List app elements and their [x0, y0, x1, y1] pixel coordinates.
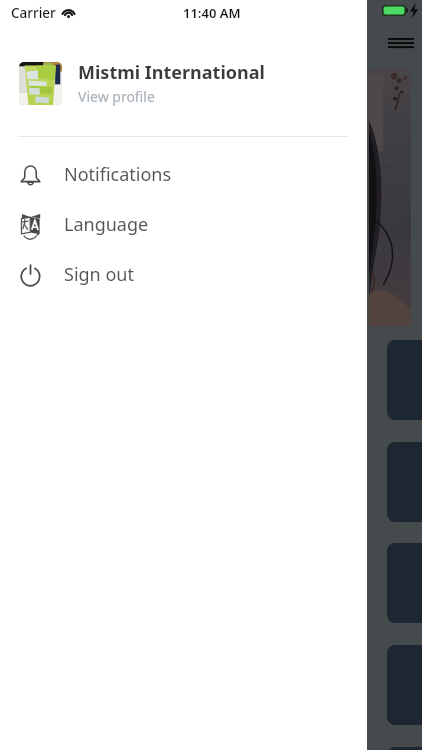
- staticText: View profile: [78, 87, 155, 106]
- button[interactable]: [387, 747, 422, 750]
- button[interactable]: Language: [0, 199, 367, 249]
- button[interactable]: Mistmi International: [0, 56, 367, 110]
- button[interactable]: [387, 442, 422, 522]
- button[interactable]: [387, 543, 422, 623]
- staticText: 11:40 AM: [183, 4, 241, 22]
- staticText: Sign out: [64, 262, 134, 287]
- button[interactable]: Sign out: [0, 249, 367, 299]
- button[interactable]: [387, 645, 422, 725]
- staticText: Notifications: [64, 162, 172, 187]
- staticText: Carrier: [11, 4, 56, 22]
- button[interactable]: Menu: [382, 28, 420, 66]
- button[interactable]: [387, 340, 422, 420]
- staticText: Mistmi International: [78, 60, 265, 85]
- button[interactable]: Notifications: [0, 149, 367, 199]
- staticText: Language: [64, 212, 149, 237]
